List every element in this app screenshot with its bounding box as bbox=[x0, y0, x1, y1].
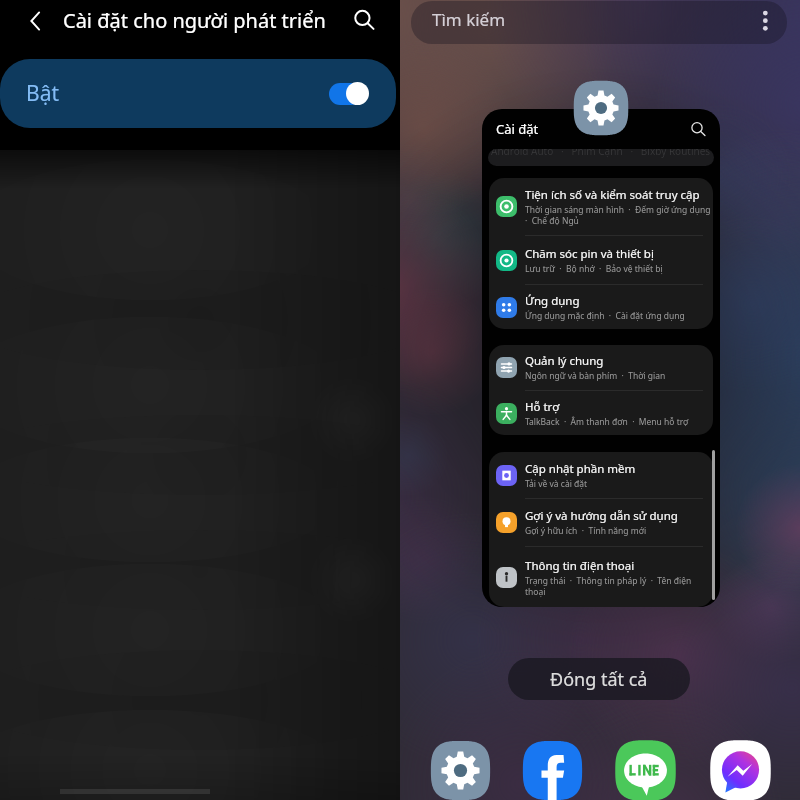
button[interactable]: Search bbox=[340, 0, 388, 41]
staticText: Thông tin điện thoại bbox=[525, 558, 635, 574]
staticText: Cập nhật phần mềm bbox=[525, 461, 636, 477]
button[interactable]: LINE bbox=[614, 739, 677, 800]
button[interactable]: Tiện ích số và kiểm soát truy cập bbox=[489, 178, 713, 235]
button[interactable]: Cài đặt bbox=[482, 109, 720, 607]
staticText: Chăm sóc pin và thiết bị bbox=[525, 246, 654, 262]
staticText: Lưu trữ · Bộ nhớ · Bảo vệ thiết bị bbox=[525, 263, 663, 275]
staticText: Gợi ý hữu ích · Tính năng mới bbox=[525, 525, 647, 537]
button[interactable]: Đóng tất cả bbox=[508, 658, 690, 700]
staticText: Bật bbox=[26, 79, 60, 108]
staticText: Tải về và cài đặt bbox=[525, 478, 588, 490]
button[interactable]: Settings bbox=[429, 739, 492, 800]
staticText: Hỗ trợ bbox=[525, 399, 560, 415]
button[interactable]: Back bbox=[13, 0, 57, 41]
staticText: Ngôn ngữ và bàn phím · Thời gian bbox=[525, 370, 666, 382]
staticText: Ứng dụng bbox=[525, 293, 580, 309]
staticText: Gợi ý và hướng dẫn sử dụng bbox=[525, 508, 678, 524]
button[interactable]: Bật bbox=[0, 59, 396, 128]
button[interactable]: Hỗ trợ bbox=[489, 391, 713, 435]
staticText: Trạng thái · Thông tin pháp lý · Tên điệ… bbox=[525, 575, 692, 597]
staticText: Ứng dụng mặc định · Cài đặt ứng dụng bbox=[525, 310, 685, 322]
button[interactable]: Messenger bbox=[709, 739, 772, 800]
button[interactable]: Facebook bbox=[521, 739, 584, 800]
button[interactable]: Search settings bbox=[688, 119, 708, 139]
staticText: Tiện ích số và kiểm soát truy cập bbox=[525, 187, 700, 203]
button[interactable]: Settings app bbox=[572, 79, 630, 137]
button[interactable]: Ứng dụng bbox=[489, 285, 713, 329]
staticText: Quản lý chung bbox=[525, 353, 604, 369]
staticText: Android Auto · Phím Cạnh · Bixby Routine… bbox=[491, 149, 711, 158]
button[interactable]: Quản lý chung bbox=[489, 345, 713, 390]
button[interactable]: Tìm kiếm bbox=[411, 1, 787, 44]
button[interactable]: Thông tin điện thoại bbox=[489, 547, 713, 607]
button[interactable]: Cập nhật phần mềm bbox=[489, 452, 713, 498]
staticText: Tìm kiếm bbox=[432, 8, 506, 31]
staticText: Cài đặt bbox=[496, 120, 539, 138]
staticText: Đóng tất cả bbox=[550, 667, 648, 692]
button[interactable]: More options bbox=[745, 1, 787, 44]
staticText: Thời gian sáng màn hình · Đếm giờ ứng dụ… bbox=[525, 204, 711, 226]
staticText: TalkBack · Âm thanh đơn · Menu hỗ trợ bbox=[525, 416, 689, 428]
button[interactable]: Chăm sóc pin và thiết bị bbox=[489, 236, 713, 284]
staticText: Cài đặt cho người phát triển bbox=[63, 7, 326, 34]
button[interactable]: Gợi ý và hướng dẫn sử dụng bbox=[489, 499, 713, 546]
